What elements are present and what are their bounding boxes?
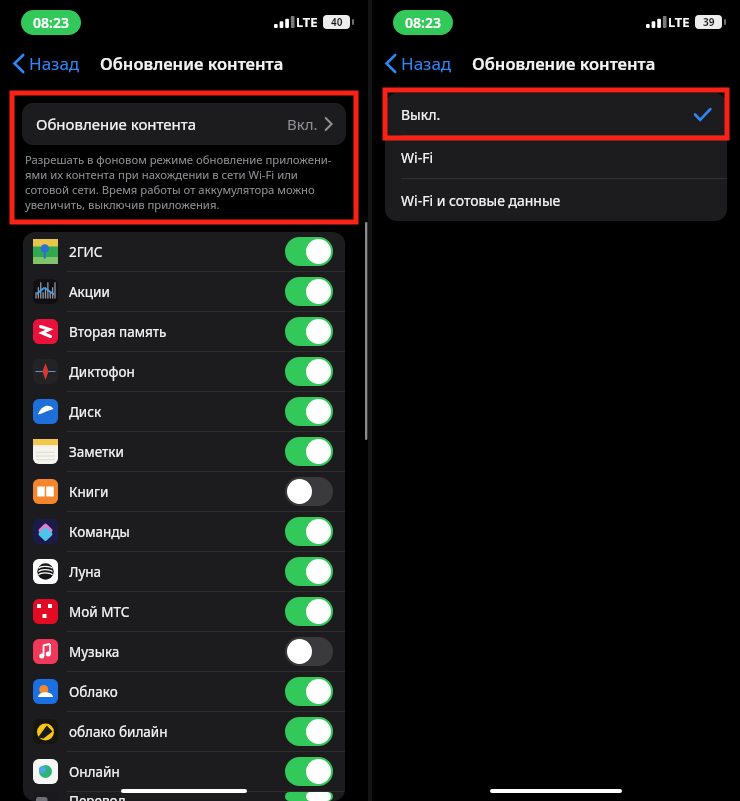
staticText: Заметки — [69, 443, 124, 461]
staticText: Обновление контента — [36, 114, 197, 134]
button[interactable]: Музыка — [23, 632, 345, 671]
staticText: Wi-Fi и сотовые данные — [401, 191, 561, 210]
staticText: Онлайн — [69, 763, 120, 781]
staticText: Мой МТС — [69, 603, 130, 621]
button[interactable]: Включено — [285, 437, 333, 466]
button[interactable]: 2ГИС — [23, 232, 345, 271]
staticText: Луна — [69, 563, 102, 581]
staticText: 2ГИС — [69, 243, 103, 261]
button[interactable]: Включено — [285, 357, 333, 386]
button[interactable]: Включено — [285, 757, 333, 786]
button[interactable]: Выключено — [285, 477, 333, 506]
button[interactable]: Назад — [8, 48, 86, 79]
staticText: Вторая память — [69, 323, 167, 341]
other: Выбрано — [694, 108, 711, 121]
button[interactable]: Включено — [285, 792, 333, 801]
button[interactable]: Обновление контента — [22, 103, 346, 145]
button[interactable]: Выключено — [285, 637, 333, 666]
staticText: Диск — [69, 403, 102, 421]
button[interactable]: Wi-Fi и сотовые данные — [385, 179, 727, 221]
button[interactable]: Включено — [285, 317, 333, 346]
button[interactable]: Включено — [285, 517, 333, 546]
button[interactable]: Мой МТС — [23, 592, 345, 631]
button[interactable]: Включено — [285, 717, 333, 746]
button[interactable]: Вторая память — [23, 312, 345, 351]
staticText: Разрешать в фоновом режиме обновление пр… — [25, 152, 332, 212]
button[interactable]: Онлайн — [23, 752, 345, 791]
button[interactable]: Включено — [285, 557, 333, 586]
staticText: Диктофон — [69, 363, 135, 381]
button[interactable]: Включено — [285, 277, 333, 306]
button[interactable]: Облако — [23, 672, 345, 711]
button[interactable]: Wi-Fi — [385, 136, 727, 178]
button[interactable]: облако билайн — [23, 712, 345, 751]
staticText: Обновление контента — [100, 52, 284, 74]
other: Назад — [14, 55, 24, 72]
staticText: 40 — [331, 15, 343, 29]
staticText: 39 — [703, 15, 715, 29]
button[interactable]: Луна — [23, 552, 345, 591]
staticText: 08:23 — [33, 13, 69, 32]
staticText: облако билайн — [69, 723, 168, 741]
button[interactable]: Диктофон — [23, 352, 345, 391]
button[interactable]: Акции — [23, 272, 345, 311]
staticText: Выкл. — [401, 105, 441, 124]
staticText: Книги — [69, 483, 109, 501]
staticText: 08:23 — [405, 13, 441, 32]
button[interactable]: Назад — [380, 48, 458, 79]
button[interactable]: Перевод — [23, 792, 345, 801]
button[interactable]: Диск — [23, 392, 345, 431]
button[interactable]: Выкл. — [385, 93, 727, 135]
staticText: Команды — [69, 523, 130, 541]
other: Назад — [386, 55, 396, 72]
staticText: Акции — [69, 283, 110, 301]
staticText: Перевод — [69, 792, 126, 801]
button[interactable]: Включено — [285, 597, 333, 626]
staticText: Назад — [29, 52, 80, 75]
staticText: LTE — [668, 13, 690, 31]
button[interactable]: Команды — [23, 512, 345, 551]
staticText: Wi-Fi — [401, 148, 434, 167]
button[interactable]: Включено — [285, 237, 333, 266]
staticText: Вкл. — [287, 114, 318, 134]
staticText: Обновление контента — [472, 52, 656, 74]
staticText: Назад — [401, 52, 452, 75]
button[interactable]: Заметки — [23, 432, 345, 471]
button[interactable]: Книги — [23, 472, 345, 511]
button[interactable]: Включено — [285, 677, 333, 706]
staticText: Облако — [69, 683, 118, 701]
staticText: Музыка — [69, 643, 120, 661]
staticText: LTE — [296, 13, 318, 31]
button[interactable]: Включено — [285, 397, 333, 426]
